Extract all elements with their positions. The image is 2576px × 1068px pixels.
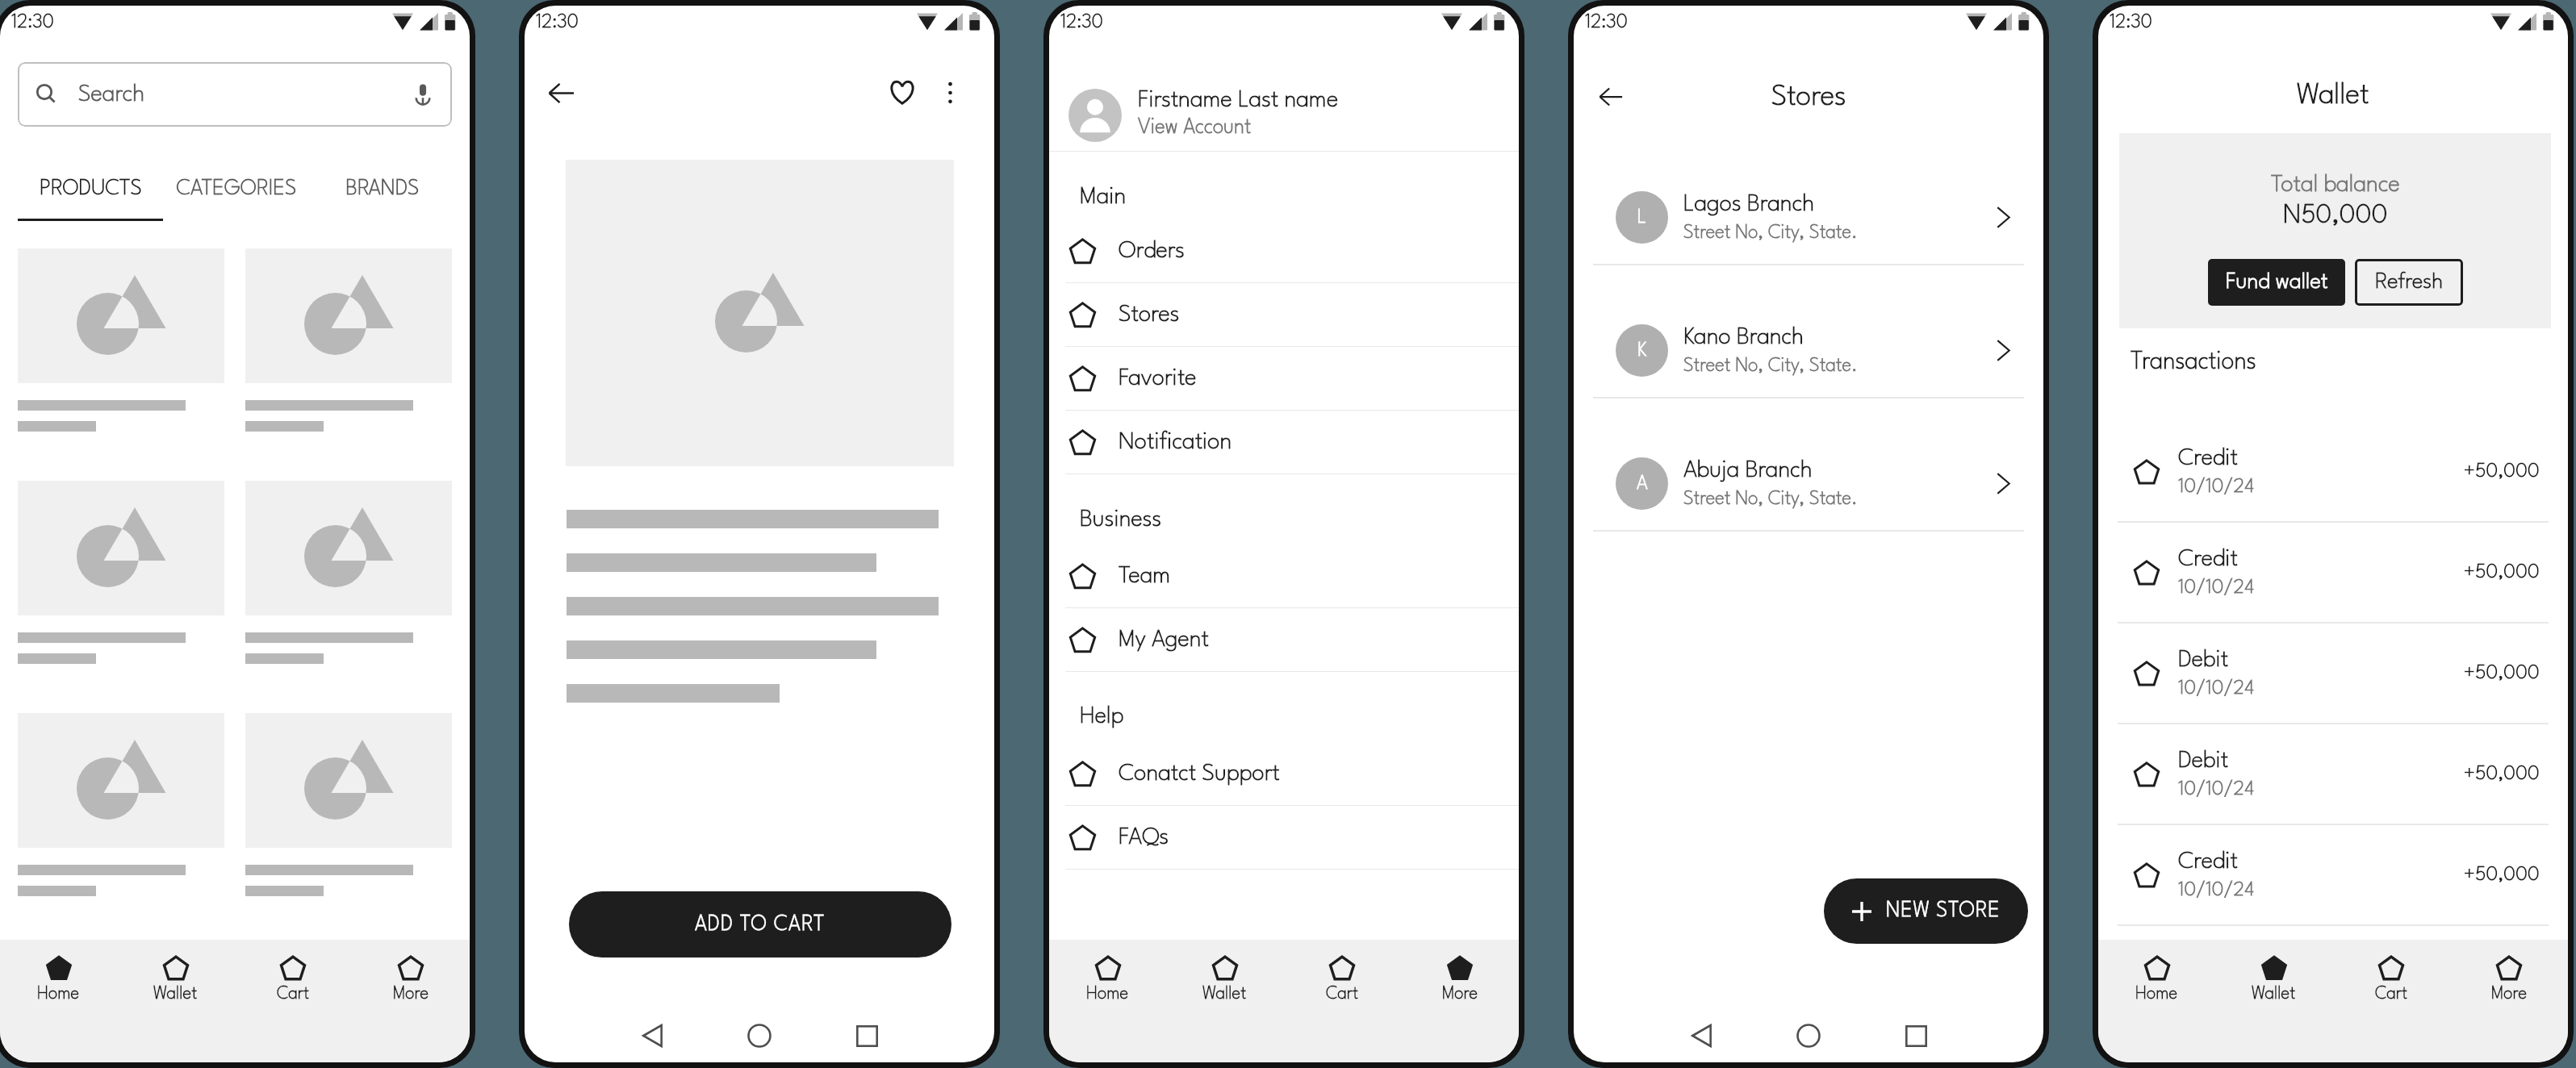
button[interactable]: Credit (2098, 523, 2568, 622)
button[interactable]: Wallet (1166, 940, 1283, 1062)
staticText: View Account (1138, 118, 1252, 138)
button[interactable]: More (2450, 940, 2568, 1062)
button[interactable]: Home (0, 940, 117, 1062)
staticText: FAQs (1119, 826, 1169, 849)
button[interactable] (18, 248, 224, 432)
button[interactable]: Back (1684, 1018, 1720, 1053)
staticText: Help (1080, 705, 1124, 728)
staticText: ADD TO CART (695, 915, 826, 935)
staticText: Stores (1119, 303, 1180, 327)
button[interactable] (245, 481, 452, 664)
button[interactable]: Fund wallet (2208, 259, 2345, 306)
button[interactable]: Back (1591, 77, 1630, 116)
staticText: Wallet (1202, 986, 1247, 1003)
staticText: +50,000 (2464, 866, 2540, 885)
staticText: 12:30 (1585, 13, 1629, 31)
staticText: BRANDS (345, 178, 420, 199)
staticText: Total balance (2271, 173, 2400, 197)
staticText: 12:30 (1060, 13, 1104, 31)
staticText: Debit (2178, 749, 2229, 773)
staticText: Cart (2375, 986, 2408, 1003)
button[interactable]: ADD TO CART (569, 891, 951, 957)
button[interactable]: Home (1791, 1018, 1826, 1053)
button[interactable]: My Agent (1049, 608, 1519, 671)
staticText: +50,000 (2464, 664, 2540, 683)
staticText: Cart (277, 986, 310, 1003)
staticText: Stores (1771, 83, 1846, 111)
staticText: Notification (1119, 431, 1232, 454)
staticText: Home (1086, 986, 1129, 1003)
button[interactable]: BRANDS (309, 178, 455, 221)
staticText: My Agent (1119, 628, 1209, 652)
button[interactable]: Firstname Last name (1049, 89, 1519, 151)
button[interactable]: More (352, 940, 470, 1062)
staticText: PRODUCTS (40, 178, 142, 199)
button[interactable]: A (1574, 398, 2043, 530)
button[interactable] (245, 713, 452, 896)
staticText: Debit (2178, 649, 2229, 672)
button[interactable]: Cart (1283, 940, 1401, 1062)
button[interactable]: More options (936, 79, 964, 106)
staticText: +50,000 (2464, 462, 2540, 482)
staticText: Kano Branch (1683, 326, 1804, 349)
staticText: Abuja Branch (1683, 459, 1813, 482)
staticText: K (1637, 341, 1647, 360)
button[interactable]: CATEGORIES (163, 178, 309, 221)
staticText: N50,000 (2283, 202, 2388, 228)
staticText: Fund wallet (2226, 272, 2328, 294)
staticText: Cart (1326, 986, 1359, 1003)
staticText: +50,000 (2464, 765, 2540, 784)
button[interactable]: K (1574, 265, 2043, 397)
button[interactable]: Back (635, 1018, 671, 1053)
staticText: 10/10/24 (2178, 881, 2255, 900)
staticText: Lagos Branch (1683, 193, 1815, 216)
staticText: 12:30 (536, 13, 579, 31)
staticText: 10/10/24 (2178, 780, 2255, 799)
staticText: Wallet (2297, 81, 2369, 110)
staticText: Credit (2178, 548, 2238, 571)
button[interactable]: L (1574, 132, 2043, 264)
staticText: +50,000 (2464, 563, 2540, 582)
button[interactable]: Home (742, 1018, 777, 1053)
staticText: Street No, City, State. (1683, 490, 1858, 508)
button[interactable]: More (1401, 940, 1519, 1062)
button[interactable]: Back (541, 73, 581, 113)
staticText: Orders (1119, 240, 1185, 263)
button[interactable]: FAQs (1049, 806, 1519, 869)
button[interactable]: Orders (1049, 219, 1519, 282)
staticText: Favorite (1119, 367, 1197, 390)
staticText: 12:30 (11, 13, 55, 31)
staticText: More (1442, 986, 1478, 1003)
button[interactable]: Conatct Support (1049, 742, 1519, 805)
button[interactable]: Wallet (117, 940, 234, 1062)
button[interactable]: PRODUCTS (18, 178, 163, 221)
button[interactable] (18, 713, 224, 896)
button[interactable] (245, 248, 452, 432)
button[interactable]: Credit (2098, 422, 2568, 521)
button[interactable]: Favorite (883, 73, 922, 112)
staticText: Home (2135, 986, 2178, 1003)
staticText: Business (1080, 508, 1162, 532)
button[interactable]: Cart (2332, 940, 2450, 1062)
button[interactable] (18, 481, 224, 664)
button[interactable]: Cart (234, 940, 352, 1062)
staticText: Credit (2178, 850, 2238, 874)
button[interactable]: Favorite (1049, 347, 1519, 410)
button[interactable]: Recents (1898, 1018, 1934, 1053)
button[interactable]: Wallet (2215, 940, 2332, 1062)
button[interactable]: Notification (1049, 411, 1519, 474)
staticText: More (393, 986, 429, 1003)
button[interactable]: Team (1049, 544, 1519, 607)
button[interactable]: Debit (2098, 724, 2568, 824)
button[interactable]: Debit (2098, 624, 2568, 723)
button[interactable]: Home (1049, 940, 1166, 1062)
button[interactable]: Recents (849, 1018, 884, 1053)
button[interactable]: Refresh (2355, 259, 2463, 306)
button[interactable]: NEW STORE (1824, 878, 2028, 944)
button[interactable]: Stores (1049, 283, 1519, 346)
button[interactable]: Credit (2098, 825, 2568, 924)
button[interactable]: Home (2098, 940, 2215, 1062)
staticText: A (1637, 474, 1648, 493)
staticText: More (2491, 986, 2528, 1003)
button[interactable]: Search (18, 62, 452, 127)
